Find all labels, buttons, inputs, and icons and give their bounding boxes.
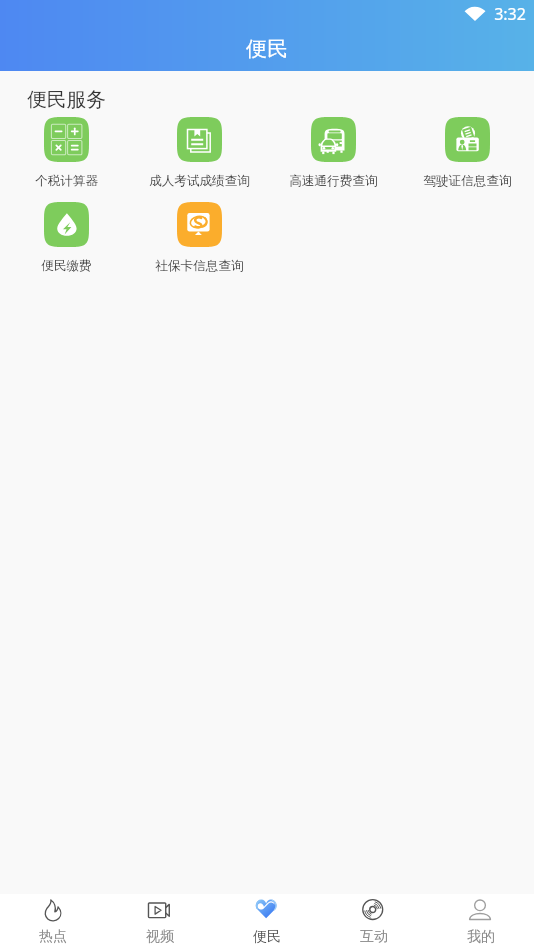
staticText: 便民服务: [27, 87, 106, 112]
other: 便民: [255, 899, 278, 922]
other: 互动: [362, 899, 385, 922]
button[interactable]: 成人考试成绩查询: [133, 117, 266, 189]
staticText: 便民: [246, 36, 288, 62]
staticText: 便民: [253, 928, 281, 946]
staticText: 视频: [146, 928, 174, 946]
staticText: 我的: [467, 928, 495, 946]
button[interactable]: 驾驶证信息查询: [400, 117, 534, 189]
staticText: 成人考试成绩查询: [149, 173, 250, 189]
staticText: 便民缴费: [41, 258, 92, 274]
staticText: 个税计算器: [35, 173, 98, 189]
staticText: 高速通行费查询: [289, 173, 378, 189]
staticText: 互动: [360, 928, 388, 946]
other: 我的: [469, 899, 492, 922]
button[interactable]: 我的: [427, 894, 534, 949]
staticText: 驾驶证信息查询: [423, 173, 512, 189]
button[interactable]: 热点: [0, 894, 106, 949]
other: Wi-Fi: [465, 7, 485, 21]
staticText: 热点: [39, 928, 67, 946]
button[interactable]: 社保卡信息查询: [133, 202, 266, 274]
button[interactable]: 便民缴费: [0, 202, 133, 274]
staticText: 社保卡信息查询: [155, 258, 244, 274]
button[interactable]: 便民: [213, 894, 320, 949]
other: 热点: [42, 899, 65, 922]
staticText: 3:32: [494, 3, 526, 25]
button[interactable]: 互动: [320, 894, 427, 949]
button[interactable]: 视频: [106, 894, 213, 949]
button[interactable]: 个税计算器: [0, 117, 133, 189]
other: 视频: [148, 899, 171, 922]
button[interactable]: 高速通行费查询: [266, 117, 400, 189]
